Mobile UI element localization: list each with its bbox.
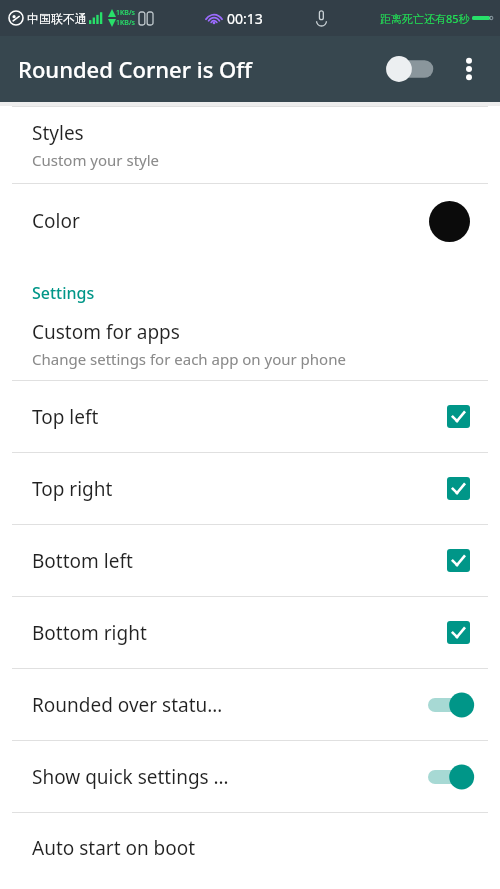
staticText: Change settings for each app on your pho… xyxy=(32,349,346,369)
button[interactable]: Top left xyxy=(0,381,500,452)
button[interactable]: Auto start on boot xyxy=(0,813,500,883)
staticText: Color xyxy=(32,208,80,234)
staticText: Top left xyxy=(32,404,99,430)
staticText: Custom for apps xyxy=(32,319,180,345)
staticText: Auto start on boot xyxy=(32,835,196,861)
button[interactable]: Toggle rounded corners xyxy=(382,49,444,89)
button[interactable]: Rounded over status bar xyxy=(0,669,500,740)
staticText: Styles xyxy=(32,120,84,146)
staticText: 中国联不通 xyxy=(27,11,87,26)
staticText: 1KB/s xyxy=(116,18,135,28)
button[interactable]: Color xyxy=(0,184,500,258)
button[interactable]: Bottom left xyxy=(0,525,500,596)
staticText: Bottom left xyxy=(32,548,133,574)
button[interactable]: Bottom right xyxy=(0,597,500,668)
button[interactable]: More options xyxy=(448,48,490,90)
staticText: Rounded Corner is Off xyxy=(18,54,253,84)
button[interactable]: Styles xyxy=(0,107,500,183)
staticText: Bottom right xyxy=(32,620,147,646)
button[interactable]: Top right xyxy=(0,453,500,524)
staticText: 距离死亡还有85秒 xyxy=(380,11,470,26)
button[interactable]: Custom for apps xyxy=(0,308,500,380)
staticText: Rounded over status bar xyxy=(32,692,230,718)
staticText: 1KB/s xyxy=(116,8,135,18)
staticText: Show quick settings on notification xyxy=(32,764,230,790)
button[interactable]: Show quick settings on notification xyxy=(0,741,500,812)
staticText: Custom your style xyxy=(32,150,160,170)
staticText: Top right xyxy=(32,476,113,502)
staticText: Settings xyxy=(32,282,95,304)
staticText: 00:13 xyxy=(227,9,263,28)
